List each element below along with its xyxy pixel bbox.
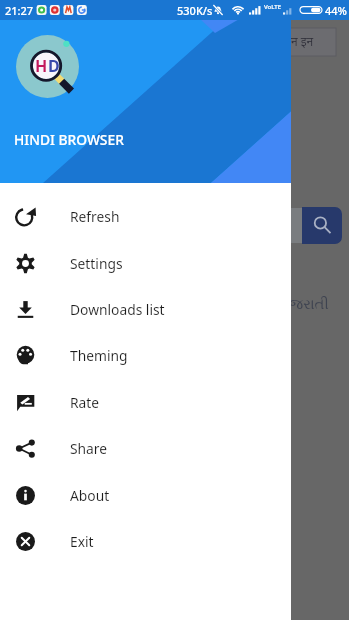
staticText: इन इन <box>285 33 314 49</box>
staticText: Rate <box>70 393 100 412</box>
staticText: H <box>35 55 48 77</box>
staticText: HINDI BROWSER <box>14 130 124 149</box>
staticText: 44% <box>325 3 347 18</box>
staticText: Theming <box>70 346 128 365</box>
button[interactable]: Settings <box>0 240 291 286</box>
staticText: About <box>70 486 110 505</box>
button[interactable]: Search <box>302 207 342 244</box>
button[interactable]: About <box>0 472 291 518</box>
button[interactable]: Downloads list <box>0 286 291 332</box>
staticText: 530K/s <box>177 3 213 18</box>
button[interactable]: इन इन <box>255 28 336 56</box>
staticText: 21:27 <box>5 3 34 18</box>
button[interactable]: Exit <box>0 518 291 564</box>
button[interactable]: Rate <box>0 379 291 425</box>
staticText: D <box>48 55 60 77</box>
staticText: જરાતી <box>289 297 329 312</box>
staticText: VoLTE <box>264 3 282 11</box>
staticText: Settings <box>70 254 123 273</box>
button[interactable]: Refresh <box>0 193 291 239</box>
staticText: Downloads list <box>70 300 165 319</box>
staticText: Share <box>70 439 108 458</box>
staticText: Refresh <box>70 207 120 226</box>
button[interactable]: Theming <box>0 332 291 378</box>
staticText: Exit <box>70 532 94 551</box>
button[interactable]: Share <box>0 425 291 471</box>
